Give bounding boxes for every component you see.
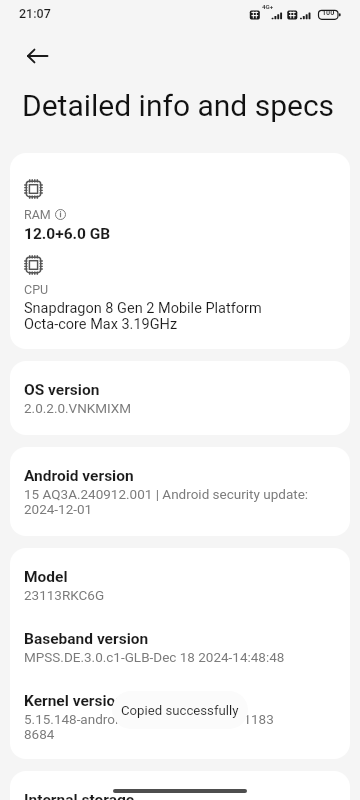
staticText: Model [24,568,68,586]
staticText: 15 AQ3A.240912.001 | Android security up… [24,486,309,517]
staticText: Copied successfully [121,703,239,718]
staticText: CPU [24,282,49,297]
button[interactable]: Internal storage [10,771,350,800]
staticText: Android version [24,467,134,485]
staticText: 12.0+6.0 GB [24,225,111,243]
staticText: Detailed info and specs [22,88,335,123]
staticText: 21:07 [19,6,51,21]
button[interactable]: Back [15,34,59,78]
button[interactable]: Android version [10,447,350,536]
staticText: MPSS.DE.3.0.c1-GLB-Dec 18 2024-14:48:48 [24,649,285,665]
staticText: 2.0.2.0.VNKMIXM [24,400,132,416]
staticText: 23113RKC6G [24,587,105,603]
staticText: 4G+ [262,3,274,10]
button[interactable]: Model [10,548,350,759]
staticText: Baseband version [24,630,149,648]
staticText: Internal storage [24,791,135,800]
staticText: 100 [322,8,335,16]
button[interactable]: OS version [10,361,350,435]
staticText: RAM [24,207,51,222]
staticText: OS version [24,381,100,399]
staticText: 5.15.148-android14-11-g1afc12ef-ab1183 8… [24,711,274,742]
button[interactable]: RAM [10,153,350,349]
staticText: Kernel version [24,692,125,710]
staticText: Snapdragon 8 Gen 2 Mobile Platform Octa-… [24,300,262,333]
